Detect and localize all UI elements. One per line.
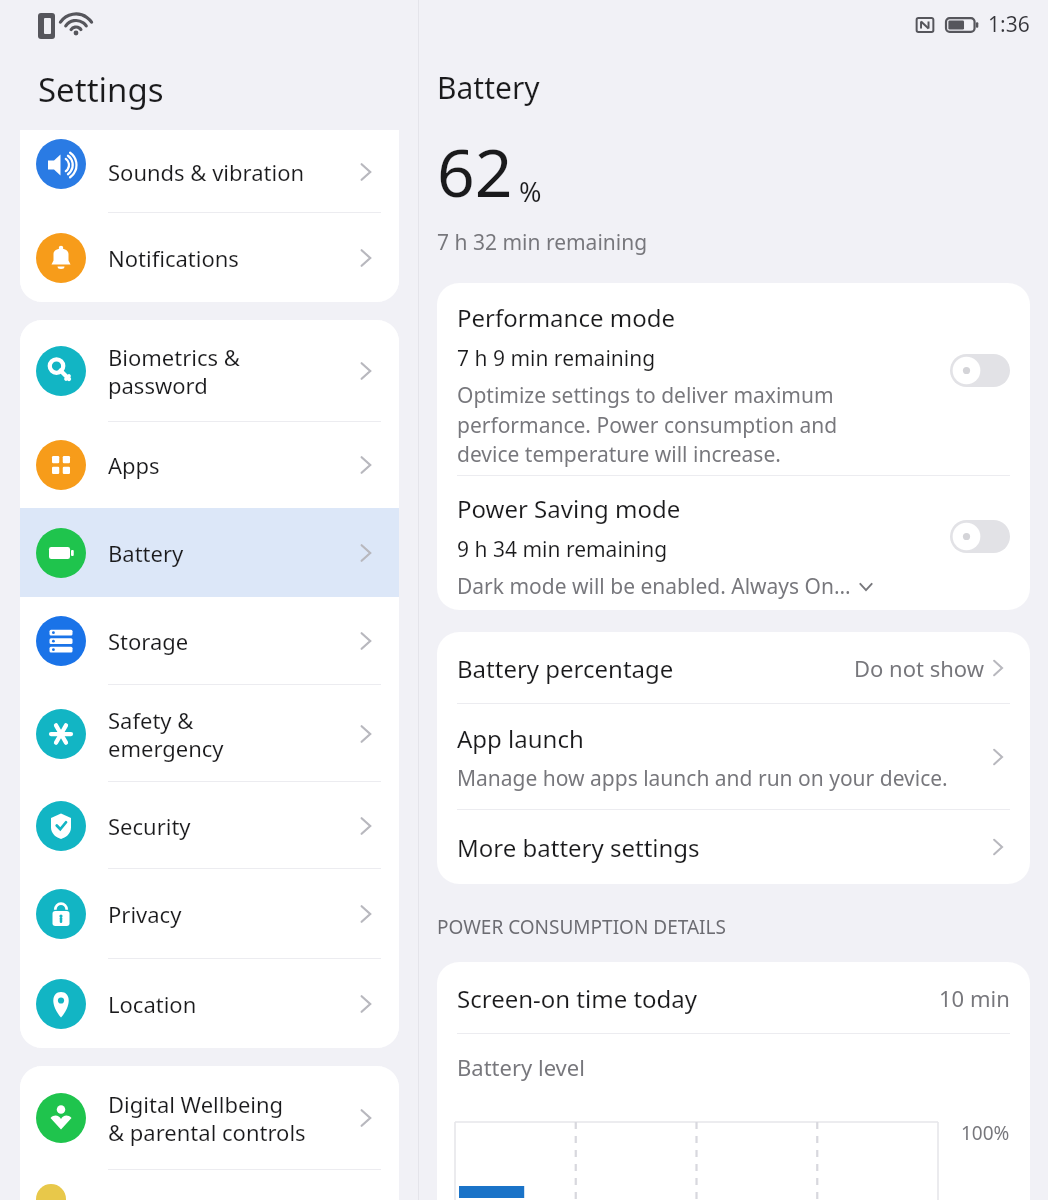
staticText: Biometrics & password xyxy=(108,342,355,400)
staticText: Optimize settings to deliver maximum per… xyxy=(457,381,838,468)
staticText: Dark mode will be enabled. Always On… xyxy=(457,572,851,601)
staticText: Battery level xyxy=(457,1052,585,1082)
button[interactable]: Safety & emergency xyxy=(20,685,399,782)
staticText: Digital Wellbeing & parental controls xyxy=(108,1089,355,1147)
button[interactable]: Sounds & vibration xyxy=(20,130,399,213)
button[interactable]: More battery settings xyxy=(437,810,1030,884)
staticText: Privacy xyxy=(108,899,355,929)
staticText: Performance mode xyxy=(457,301,675,334)
button[interactable]: Battery percentage xyxy=(437,632,1030,704)
staticText: 7 h 9 min remaining xyxy=(457,344,656,373)
button[interactable]: Security xyxy=(20,782,399,869)
button[interactable]: Apps xyxy=(20,422,399,508)
staticText: Sounds & vibration xyxy=(108,157,355,187)
staticText: 62 xyxy=(437,126,513,216)
staticText: More battery settings xyxy=(457,831,988,864)
button[interactable]: Notifications xyxy=(20,213,399,302)
staticText: Battery xyxy=(108,538,355,568)
button[interactable]: Toggle xyxy=(950,354,1010,387)
staticText: Manage how apps launch and run on your d… xyxy=(457,764,948,793)
staticText: Do not show xyxy=(854,653,984,683)
button[interactable]: Battery xyxy=(20,508,399,597)
staticText: Battery xyxy=(437,67,540,108)
staticText: Settings xyxy=(38,67,164,112)
button[interactable]: Digital Wellbeing & parental controls xyxy=(20,1066,399,1170)
button[interactable]: App launch xyxy=(437,704,1030,810)
button[interactable]: Privacy xyxy=(20,869,399,959)
staticText: Storage xyxy=(108,626,355,656)
staticText: Screen-on time today xyxy=(457,982,939,1015)
staticText: 7 h 32 min remaining xyxy=(437,228,648,257)
staticText: Security xyxy=(108,811,355,841)
staticText: 10 min xyxy=(939,983,1010,1013)
staticText: 1:36 xyxy=(988,10,1030,39)
button[interactable]: Performance mode xyxy=(437,283,1030,476)
staticText: % xyxy=(519,173,542,210)
staticText: POWER CONSUMPTION DETAILS xyxy=(437,914,726,940)
button[interactable]: Screen-on time today xyxy=(437,962,1030,1034)
staticText: Battery percentage xyxy=(457,652,854,685)
staticText: 9 h 34 min remaining xyxy=(457,535,668,564)
button[interactable]: Toggle xyxy=(950,520,1010,553)
staticText: App launch xyxy=(457,722,584,755)
button[interactable]: Storage xyxy=(20,597,399,685)
staticText: Power Saving mode xyxy=(457,492,681,525)
button[interactable]: Biometrics & password xyxy=(20,320,399,422)
button[interactable]: Location xyxy=(20,959,399,1048)
staticText: 100% xyxy=(961,1120,1010,1146)
staticText: Location xyxy=(108,989,355,1019)
staticText: Apps xyxy=(108,450,355,480)
staticText: Safety & emergency xyxy=(108,705,355,763)
staticText: Notifications xyxy=(108,243,355,273)
button[interactable]: Power Saving mode xyxy=(437,476,1030,610)
